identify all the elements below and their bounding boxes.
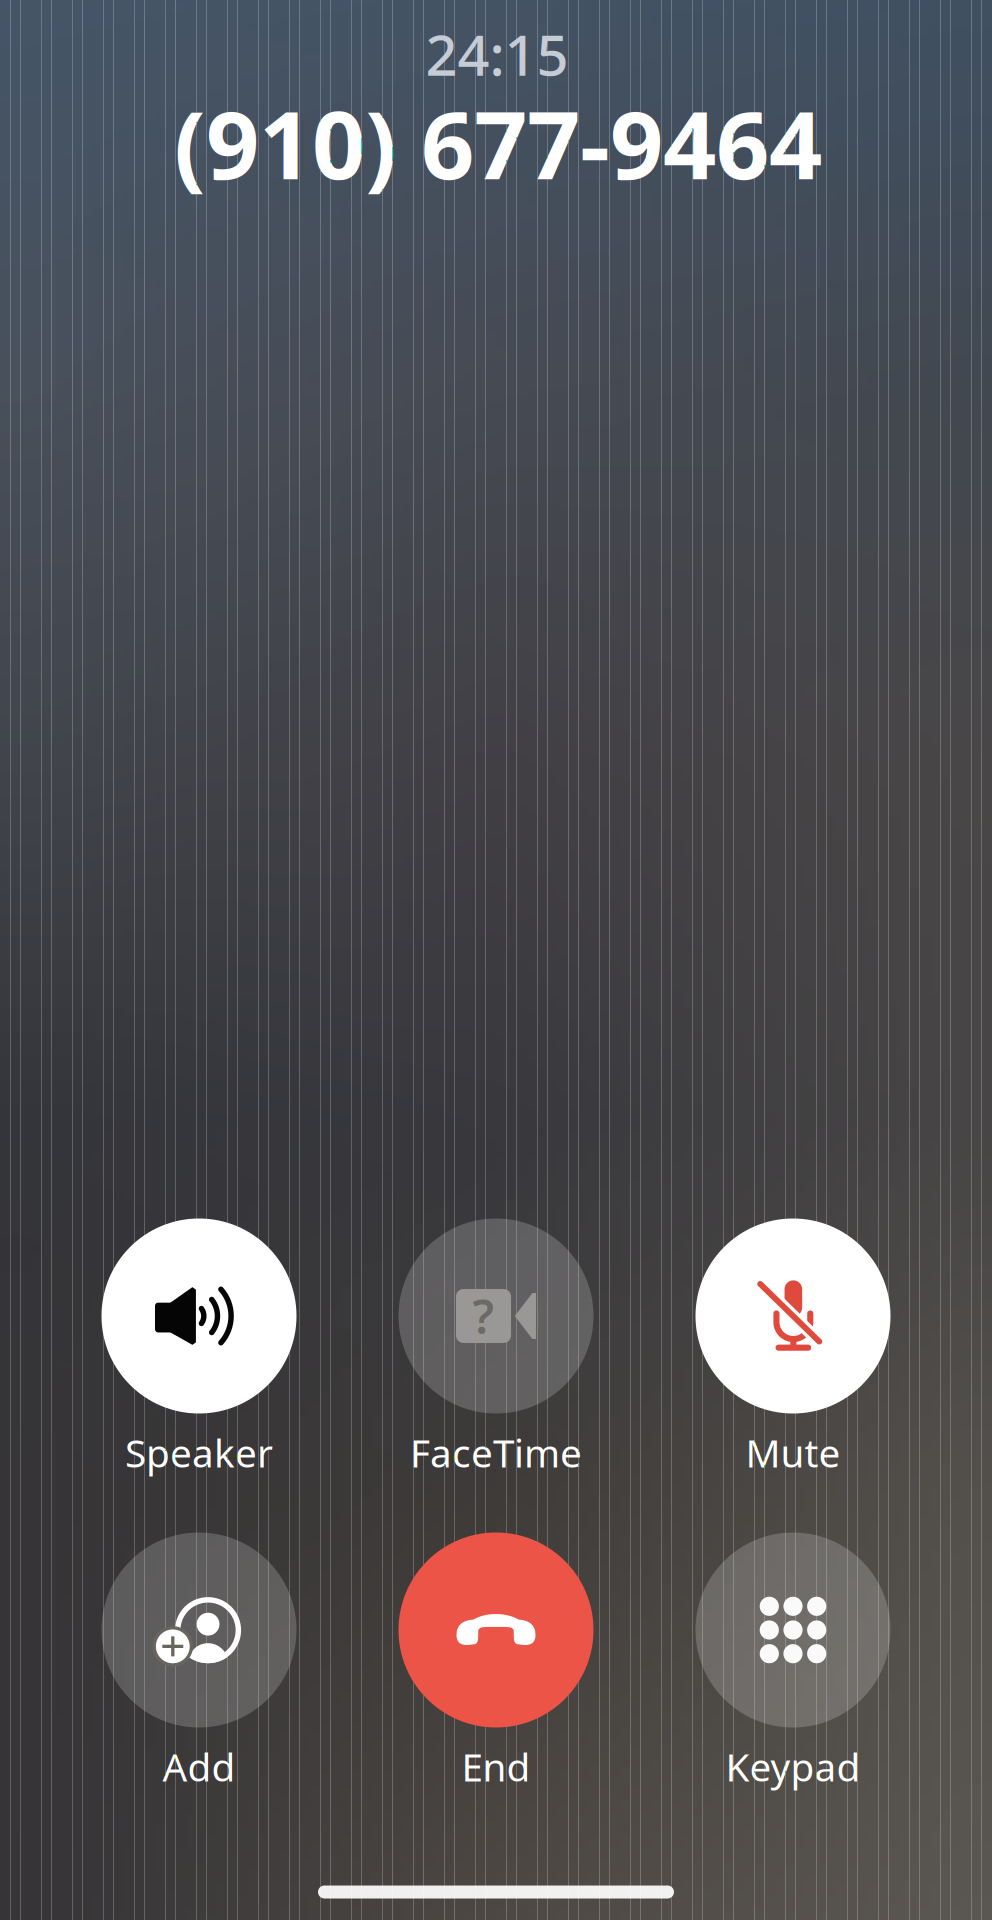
staticText: Mute	[745, 1427, 840, 1478]
staticText: Keypad	[725, 1741, 860, 1792]
button[interactable]: Keypad	[653, 1532, 933, 1793]
button[interactable]: End	[356, 1532, 636, 1793]
button[interactable]: Mute	[653, 1218, 933, 1479]
staticText: Speaker	[125, 1427, 273, 1478]
button[interactable]: Speaker	[59, 1218, 339, 1479]
button[interactable]: Add	[59, 1532, 339, 1793]
staticText: End	[461, 1741, 530, 1792]
staticText: Add	[162, 1741, 235, 1792]
staticText: (910) 677-9464	[174, 81, 822, 205]
staticText: 24:15	[425, 17, 568, 91]
staticText: FaceTime	[410, 1427, 582, 1478]
button[interactable]: FaceTime	[356, 1218, 636, 1479]
staticText: ?	[472, 1285, 494, 1347]
